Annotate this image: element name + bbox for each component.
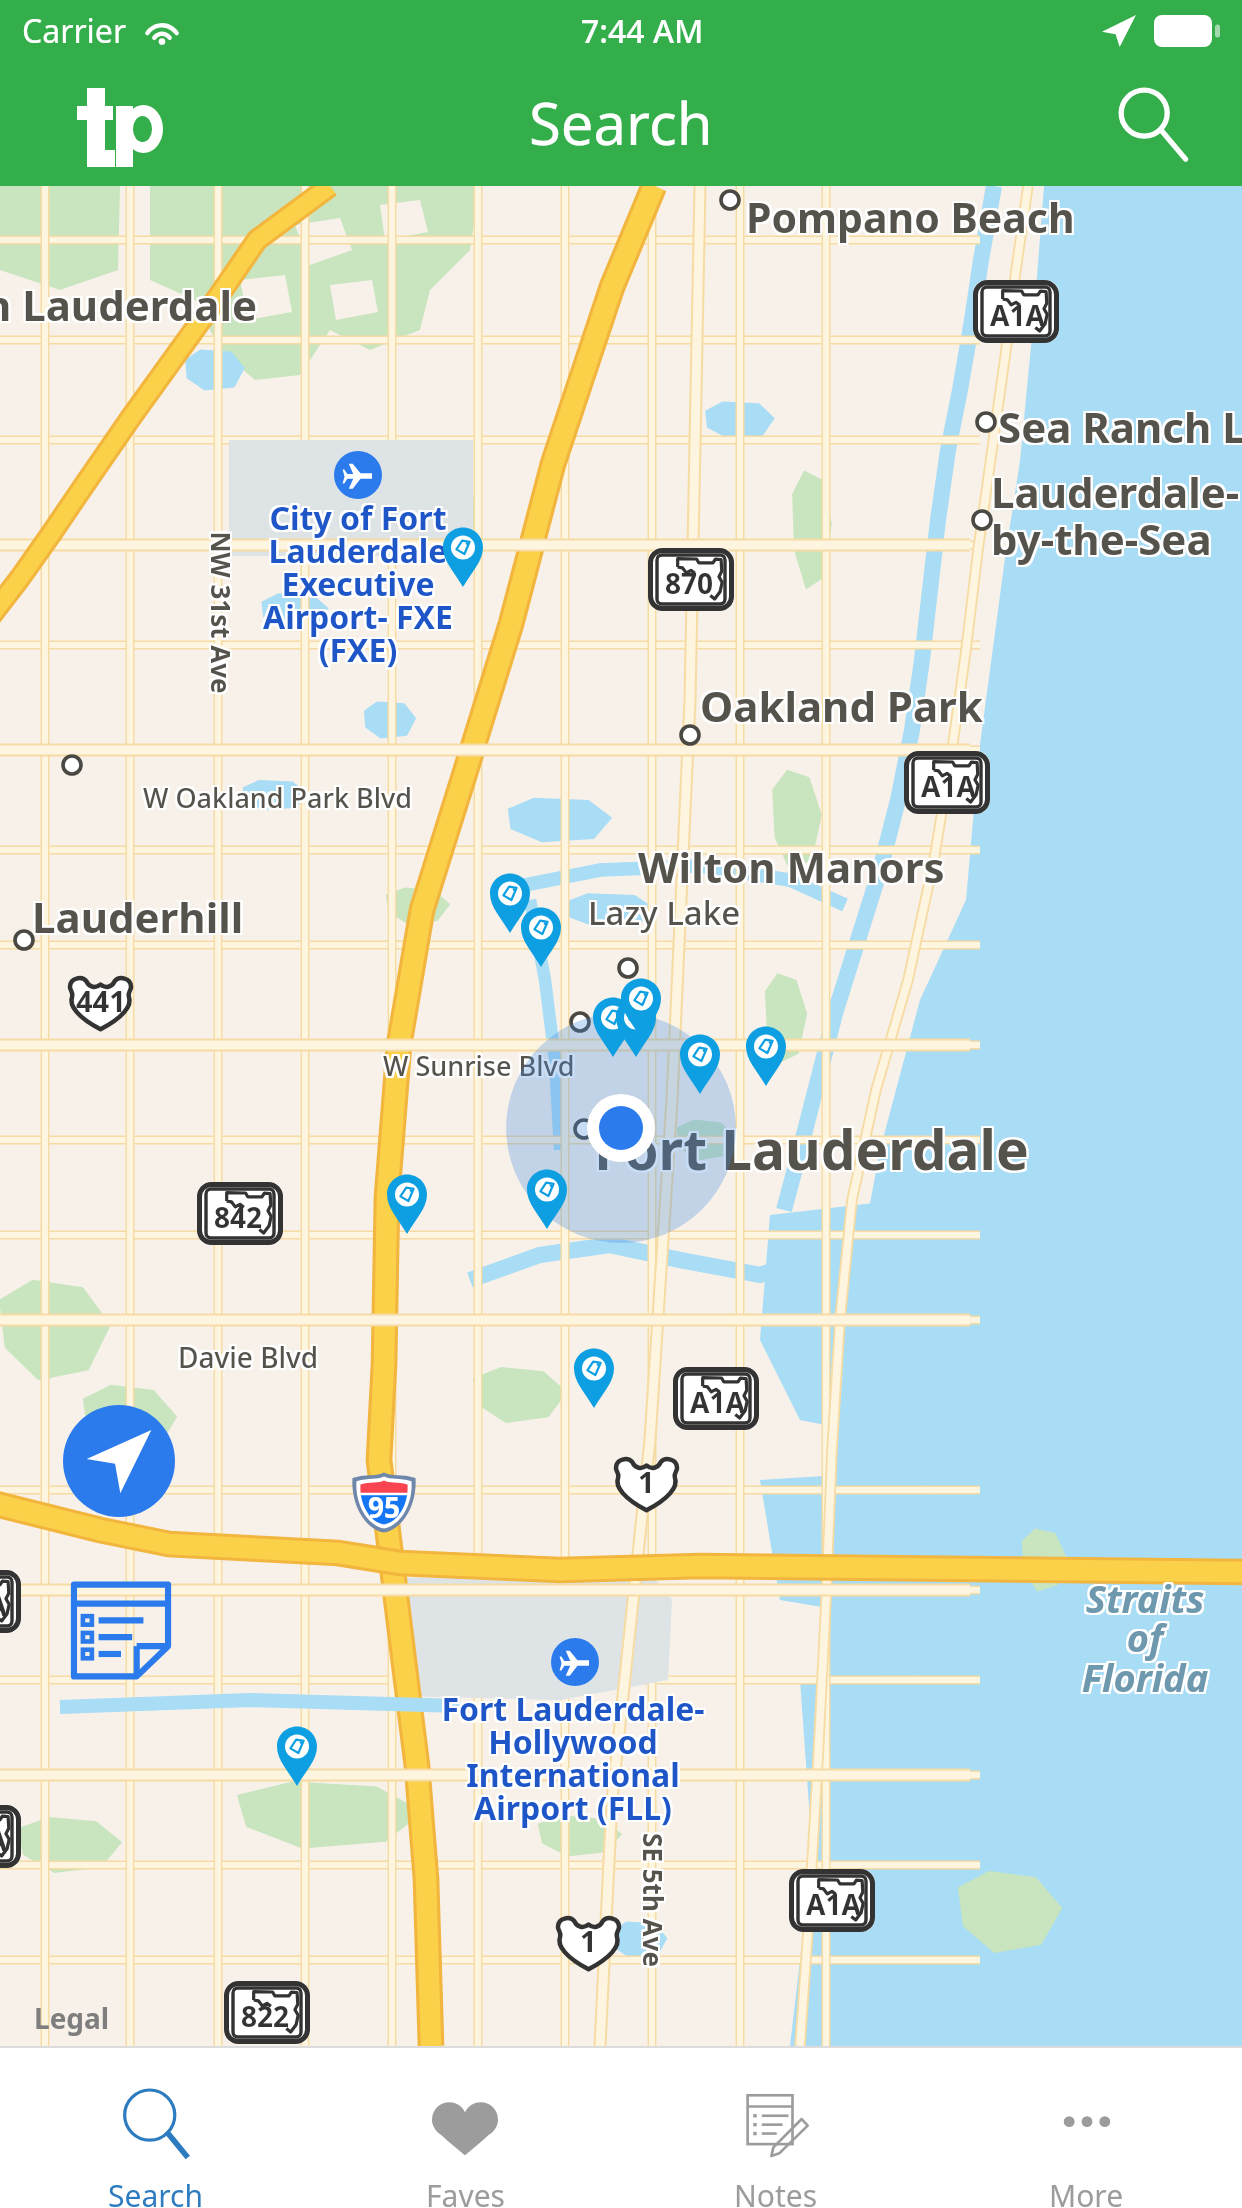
staticText: Wilton Manors bbox=[640, 836, 947, 893]
staticText: Sea Ranch Lak bbox=[998, 398, 1242, 455]
staticText: A1A bbox=[690, 1383, 745, 1421]
staticText: Oakland Park bbox=[702, 675, 985, 732]
staticText: NW 31st Ave bbox=[202, 529, 237, 692]
staticText: Sea Ranch Lak bbox=[1000, 398, 1242, 455]
staticText: SE 5th Ave bbox=[638, 1835, 673, 1969]
staticText: NW 31st Ave bbox=[202, 533, 237, 696]
staticText: A1A bbox=[806, 1885, 861, 1923]
button[interactable]: My location bbox=[63, 1405, 175, 1517]
staticText: W Oakland Park Blvd bbox=[145, 779, 414, 816]
staticText: Straits of Florida bbox=[1015, 1574, 1242, 1705]
staticText: h Lauderdale bbox=[0, 278, 258, 335]
staticText: Pompano Beach bbox=[746, 191, 1075, 247]
staticText: h Lauderdale bbox=[0, 276, 260, 333]
staticText: Oakland Park bbox=[698, 677, 981, 734]
staticText: NW 31st Ave bbox=[206, 531, 241, 694]
staticText: 822 bbox=[241, 1997, 290, 2035]
button[interactable]: Home bbox=[77, 88, 163, 167]
staticText: SE 5th Ave bbox=[636, 1831, 671, 1965]
button[interactable]: Search bbox=[0, 2048, 310, 2208]
staticText: Wilton Manors bbox=[636, 840, 943, 897]
staticText: Fort Lauderdale- Hollywood International… bbox=[341, 1689, 801, 1831]
staticText: 1 bbox=[580, 1921, 597, 1960]
staticText: Lazy Lake bbox=[590, 888, 743, 933]
staticText: SE 5th Ave bbox=[634, 1831, 669, 1965]
staticText: Lauderhill bbox=[30, 890, 242, 947]
staticText: Carrier bbox=[22, 9, 127, 53]
staticText: More bbox=[1049, 2175, 1124, 2208]
staticText: Fort Lauderdale bbox=[592, 1113, 1027, 1188]
staticText: City of Fort Lauderdale Executive Airpor… bbox=[148, 494, 568, 669]
staticText: Fort Lauderdale- Hollywood International… bbox=[345, 1685, 805, 1827]
staticText: Pompano Beach bbox=[748, 187, 1077, 243]
staticText: Fort Lauderdale- Hollywood International… bbox=[343, 1687, 803, 1829]
staticText: W Sunrise Blvd bbox=[383, 1045, 575, 1082]
staticText: SE 5th Ave bbox=[634, 1833, 669, 1967]
button[interactable]: Search bbox=[1102, 74, 1202, 174]
staticText: W Sunrise Blvd bbox=[381, 1047, 573, 1084]
staticText: Fort Lauderdale bbox=[594, 1109, 1029, 1184]
staticText: Straits of Florida bbox=[1015, 1570, 1242, 1701]
staticText: Davie Blvd bbox=[176, 1338, 317, 1376]
staticText: Fort Lauderdale- Hollywood International… bbox=[341, 1687, 801, 1829]
staticText: Pompano Beach bbox=[744, 187, 1073, 243]
staticText: W Sunrise Blvd bbox=[385, 1049, 577, 1086]
staticText: NW 31st Ave bbox=[206, 529, 241, 692]
staticText: Fort Lauderdale- Hollywood International… bbox=[345, 1689, 805, 1831]
staticText: Oakland Park bbox=[698, 679, 981, 736]
staticText: Wilton Manors bbox=[636, 838, 943, 895]
staticText: W Oakland Park Blvd bbox=[145, 777, 414, 814]
staticText: W Sunrise Blvd bbox=[385, 1047, 577, 1084]
staticText: SE 5th Ave bbox=[638, 1833, 673, 1967]
button[interactable]: Notes bbox=[620, 2048, 931, 2208]
staticText: Wilton Manors bbox=[638, 840, 945, 897]
staticText: Lauderdale- by-the-Sea bbox=[991, 461, 1240, 565]
staticText: h Lauderdale bbox=[0, 278, 260, 335]
staticText: Lazy Lake bbox=[586, 888, 739, 933]
staticText: Lazy Lake bbox=[588, 892, 741, 937]
staticText: Lauderhill bbox=[32, 886, 244, 943]
staticText: W Sunrise Blvd bbox=[385, 1045, 577, 1082]
staticText: SE 5th Ave bbox=[634, 1835, 669, 1969]
staticText: Lazy Lake bbox=[586, 890, 739, 935]
staticText: W Sunrise Blvd bbox=[383, 1047, 575, 1084]
staticText: W Sunrise Blvd bbox=[381, 1045, 573, 1082]
staticText: 95 bbox=[368, 1488, 401, 1526]
staticText: City of Fort Lauderdale Executive Airpor… bbox=[150, 494, 570, 669]
staticText: SE 5th Ave bbox=[636, 1835, 671, 1969]
staticText: Lazy Lake bbox=[588, 890, 741, 935]
button[interactable]: Faves bbox=[310, 2048, 620, 2208]
staticText: NW 31st Ave bbox=[204, 529, 239, 692]
staticText: Sea Ranch Lak bbox=[996, 400, 1242, 457]
button[interactable]: More bbox=[931, 2048, 1242, 2208]
staticText: 7:44 AM bbox=[581, 9, 704, 53]
staticText: Lauderhill bbox=[30, 888, 242, 945]
staticText: Lauderdale- by-the-Sea bbox=[993, 461, 1242, 565]
staticText: Search bbox=[529, 83, 713, 162]
staticText: W Oakland Park Blvd bbox=[143, 779, 412, 816]
staticText: Sea Ranch Lak bbox=[998, 400, 1242, 457]
staticText: City of Fort Lauderdale Executive Airpor… bbox=[150, 496, 570, 671]
staticText: Davie Blvd bbox=[178, 1340, 319, 1378]
staticText: City of Fort Lauderdale Executive Airpor… bbox=[148, 496, 568, 671]
staticText: Lauderhill bbox=[34, 890, 246, 947]
staticText: City of Fort Lauderdale Executive Airpor… bbox=[148, 498, 568, 673]
staticText: Lauderhill bbox=[30, 886, 242, 943]
staticText: W Sunrise Blvd bbox=[381, 1049, 573, 1086]
staticText: Oakland Park bbox=[698, 675, 981, 732]
staticText: NW 31st Ave bbox=[202, 531, 237, 694]
button[interactable]: List view bbox=[65, 1570, 177, 1682]
staticText: 441 bbox=[76, 981, 126, 1020]
staticText: Straits of Florida bbox=[1013, 1572, 1242, 1703]
staticText: Lauderdale- by-the-Sea bbox=[991, 463, 1240, 567]
staticText: Pompano Beach bbox=[748, 191, 1077, 247]
staticText: Davie Blvd bbox=[178, 1338, 319, 1376]
staticText: Lauderdale- by-the-Sea bbox=[989, 461, 1238, 565]
staticText: Davie Blvd bbox=[176, 1340, 317, 1378]
staticText: 870 bbox=[665, 564, 714, 602]
staticText: W Oakland Park Blvd bbox=[141, 779, 410, 816]
staticText: Pompano Beach bbox=[748, 189, 1077, 245]
staticText: A1A bbox=[0, 1821, 7, 1859]
staticText: Oakland Park bbox=[702, 679, 985, 736]
staticText: W Oakland Park Blvd bbox=[145, 781, 414, 818]
